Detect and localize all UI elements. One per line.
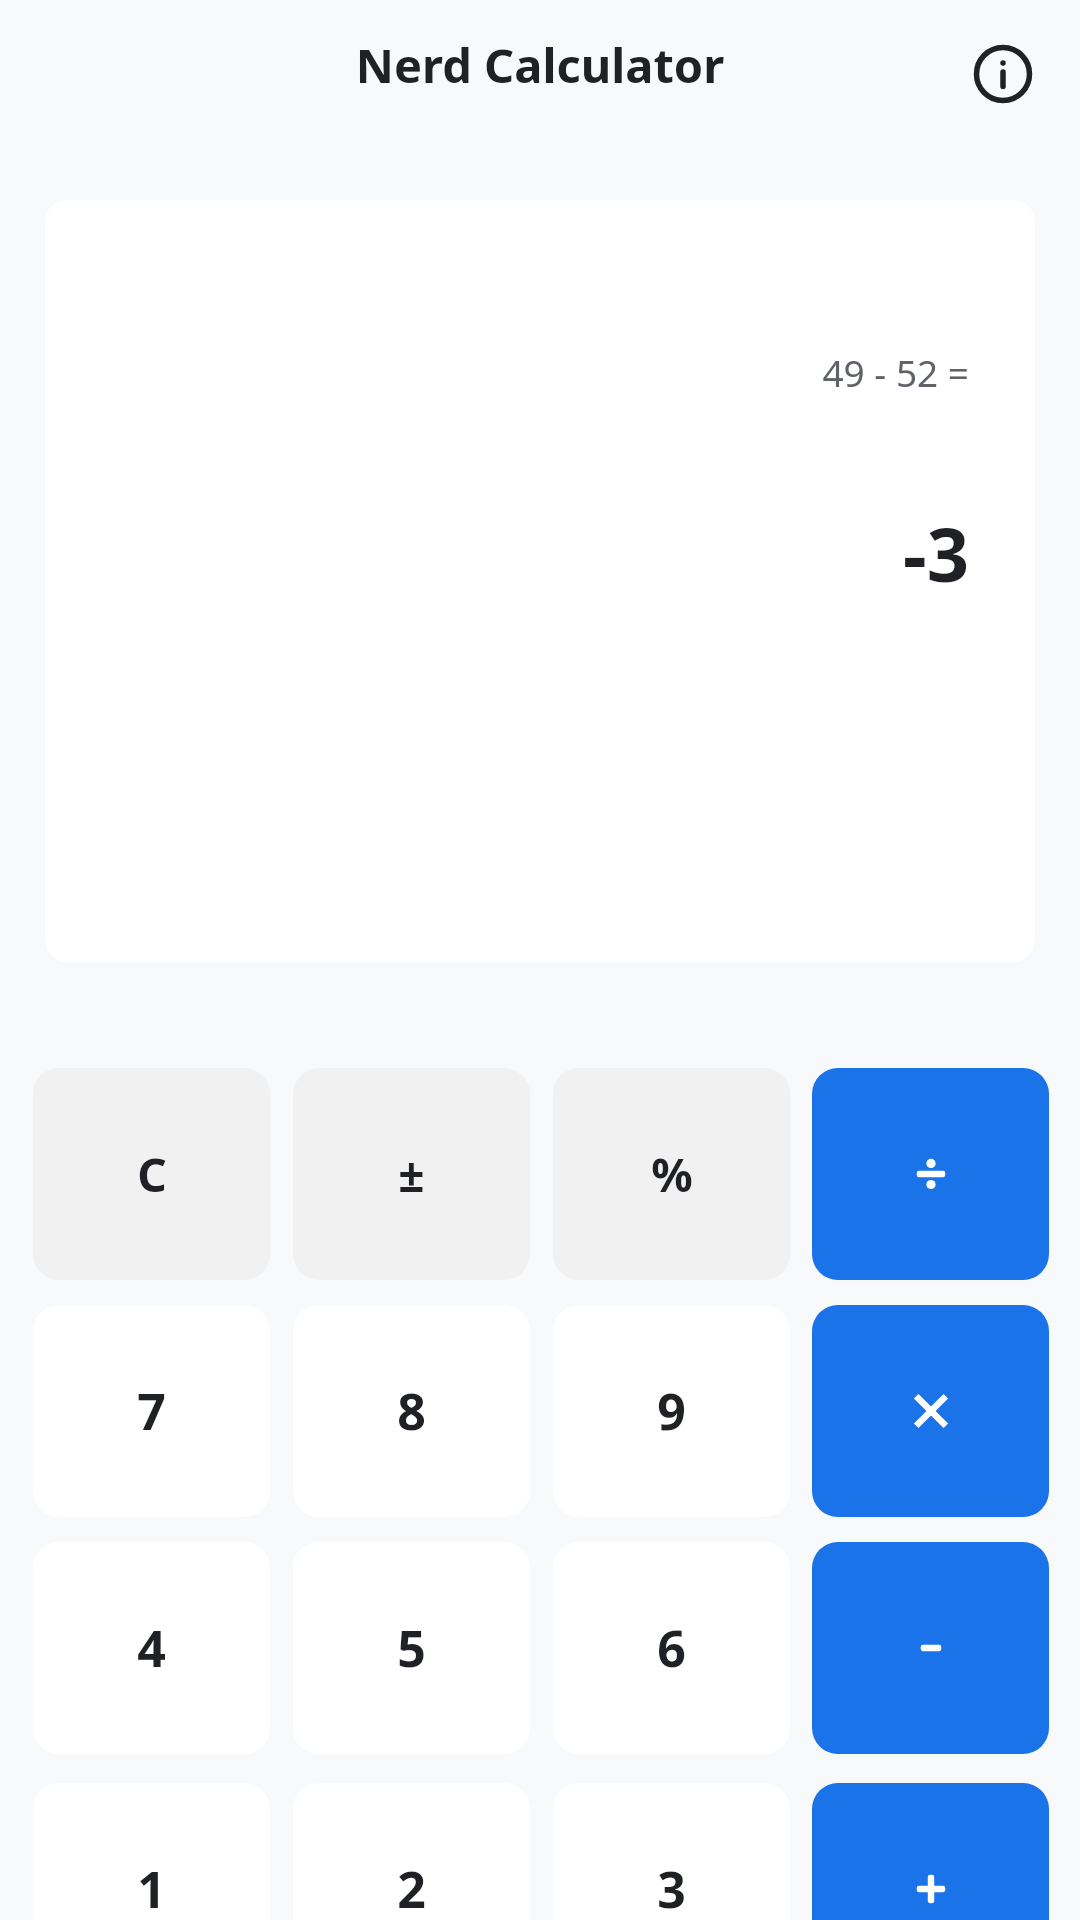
staticText: -3 [45, 503, 969, 604]
staticText: 49 - 52 = [45, 347, 969, 397]
button[interactable]: 6 [553, 1542, 790, 1754]
button[interactable]: 7 [33, 1305, 270, 1517]
staticText: 8 [397, 1377, 426, 1445]
button[interactable]: 9 [553, 1305, 790, 1517]
staticText: 5 [397, 1614, 426, 1682]
button[interactable]: Info [953, 24, 1053, 124]
staticText: % [651, 1143, 693, 1206]
button[interactable]: Subtract [812, 1542, 1049, 1754]
button[interactable]: 1 [33, 1783, 270, 1920]
staticText: ± [398, 1143, 425, 1206]
button[interactable]: 4 [33, 1542, 270, 1754]
button[interactable]: C [33, 1068, 270, 1280]
button[interactable]: 2 [293, 1783, 530, 1920]
button[interactable]: % [553, 1068, 790, 1280]
staticText: 2 [397, 1855, 426, 1920]
staticText: 6 [657, 1614, 686, 1682]
staticText: 9 [657, 1377, 686, 1445]
staticText: 1 [137, 1855, 166, 1920]
staticText: 3 [657, 1855, 686, 1920]
staticText: Nerd Calculator [0, 33, 1080, 97]
staticText: C [137, 1143, 167, 1206]
button[interactable]: Add [812, 1783, 1049, 1920]
button[interactable]: Divide [812, 1068, 1049, 1280]
button[interactable]: 5 [293, 1542, 530, 1754]
staticText: 7 [137, 1377, 166, 1445]
button[interactable]: 8 [293, 1305, 530, 1517]
button[interactable]: ± [293, 1068, 530, 1280]
staticText: 4 [137, 1614, 166, 1682]
button[interactable]: Multiply [812, 1305, 1049, 1517]
button[interactable]: 3 [553, 1783, 790, 1920]
